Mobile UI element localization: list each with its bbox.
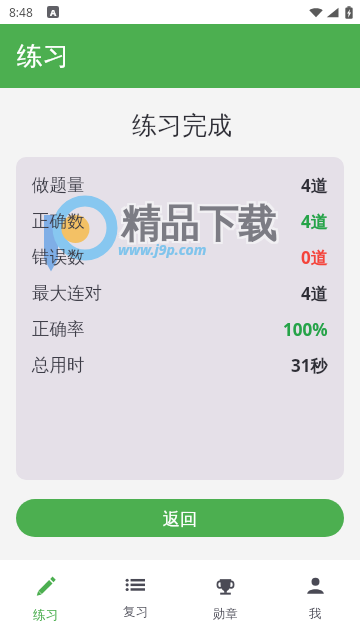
staticText: 31秒 (291, 354, 328, 377)
other: 复习 (126, 577, 145, 593)
staticText: 练习 (17, 40, 69, 73)
staticText: 4道 (301, 174, 328, 197)
staticText: 练习完成 (2, 110, 360, 141)
staticText: 正确数 (32, 210, 85, 232)
staticText: 4道 (301, 282, 328, 305)
other: 我 (306, 577, 325, 595)
staticText: 4道 (301, 210, 328, 233)
button[interactable]: 我 (270, 560, 360, 640)
staticText: 返回 (163, 509, 197, 530)
staticText: 0道 (301, 246, 328, 269)
staticText: 精品下载 (121, 201, 277, 250)
staticText: 错误数 (32, 246, 85, 268)
button[interactable]: 返回 (16, 499, 344, 537)
staticText: 勋章 (213, 606, 238, 622)
staticText: 复习 (123, 604, 148, 620)
button[interactable]: 复习 (90, 560, 180, 640)
button[interactable]: 练习 (0, 24, 360, 88)
staticText: 做题量 (32, 174, 85, 196)
staticText: 练习 (33, 607, 58, 623)
staticText: 100% (283, 318, 328, 341)
staticText: 精品下载 (121, 199, 277, 248)
staticText: A (50, 6, 57, 18)
staticText: 精品下载 (121, 197, 277, 246)
staticText: 最大连对 (32, 282, 102, 304)
staticText: 总用时 (32, 354, 85, 376)
other: 练习 (36, 577, 55, 596)
staticText: www.j9p.com (118, 240, 207, 259)
staticText: 精品下载 (123, 199, 279, 248)
staticText: 精品下载 (123, 201, 279, 250)
staticText: 我 (309, 606, 322, 622)
button[interactable]: 练习 (0, 560, 90, 640)
other: 勋章 (216, 577, 235, 595)
button[interactable]: 勋章 (180, 560, 270, 640)
staticText: 精品下载 (123, 197, 279, 246)
staticText: 精品下载 (119, 197, 275, 246)
staticText: 8:48 (9, 4, 33, 20)
staticText: 精品下载 (119, 199, 275, 248)
staticText: 正确率 (32, 318, 85, 340)
staticText: 精品下载 (119, 201, 275, 250)
